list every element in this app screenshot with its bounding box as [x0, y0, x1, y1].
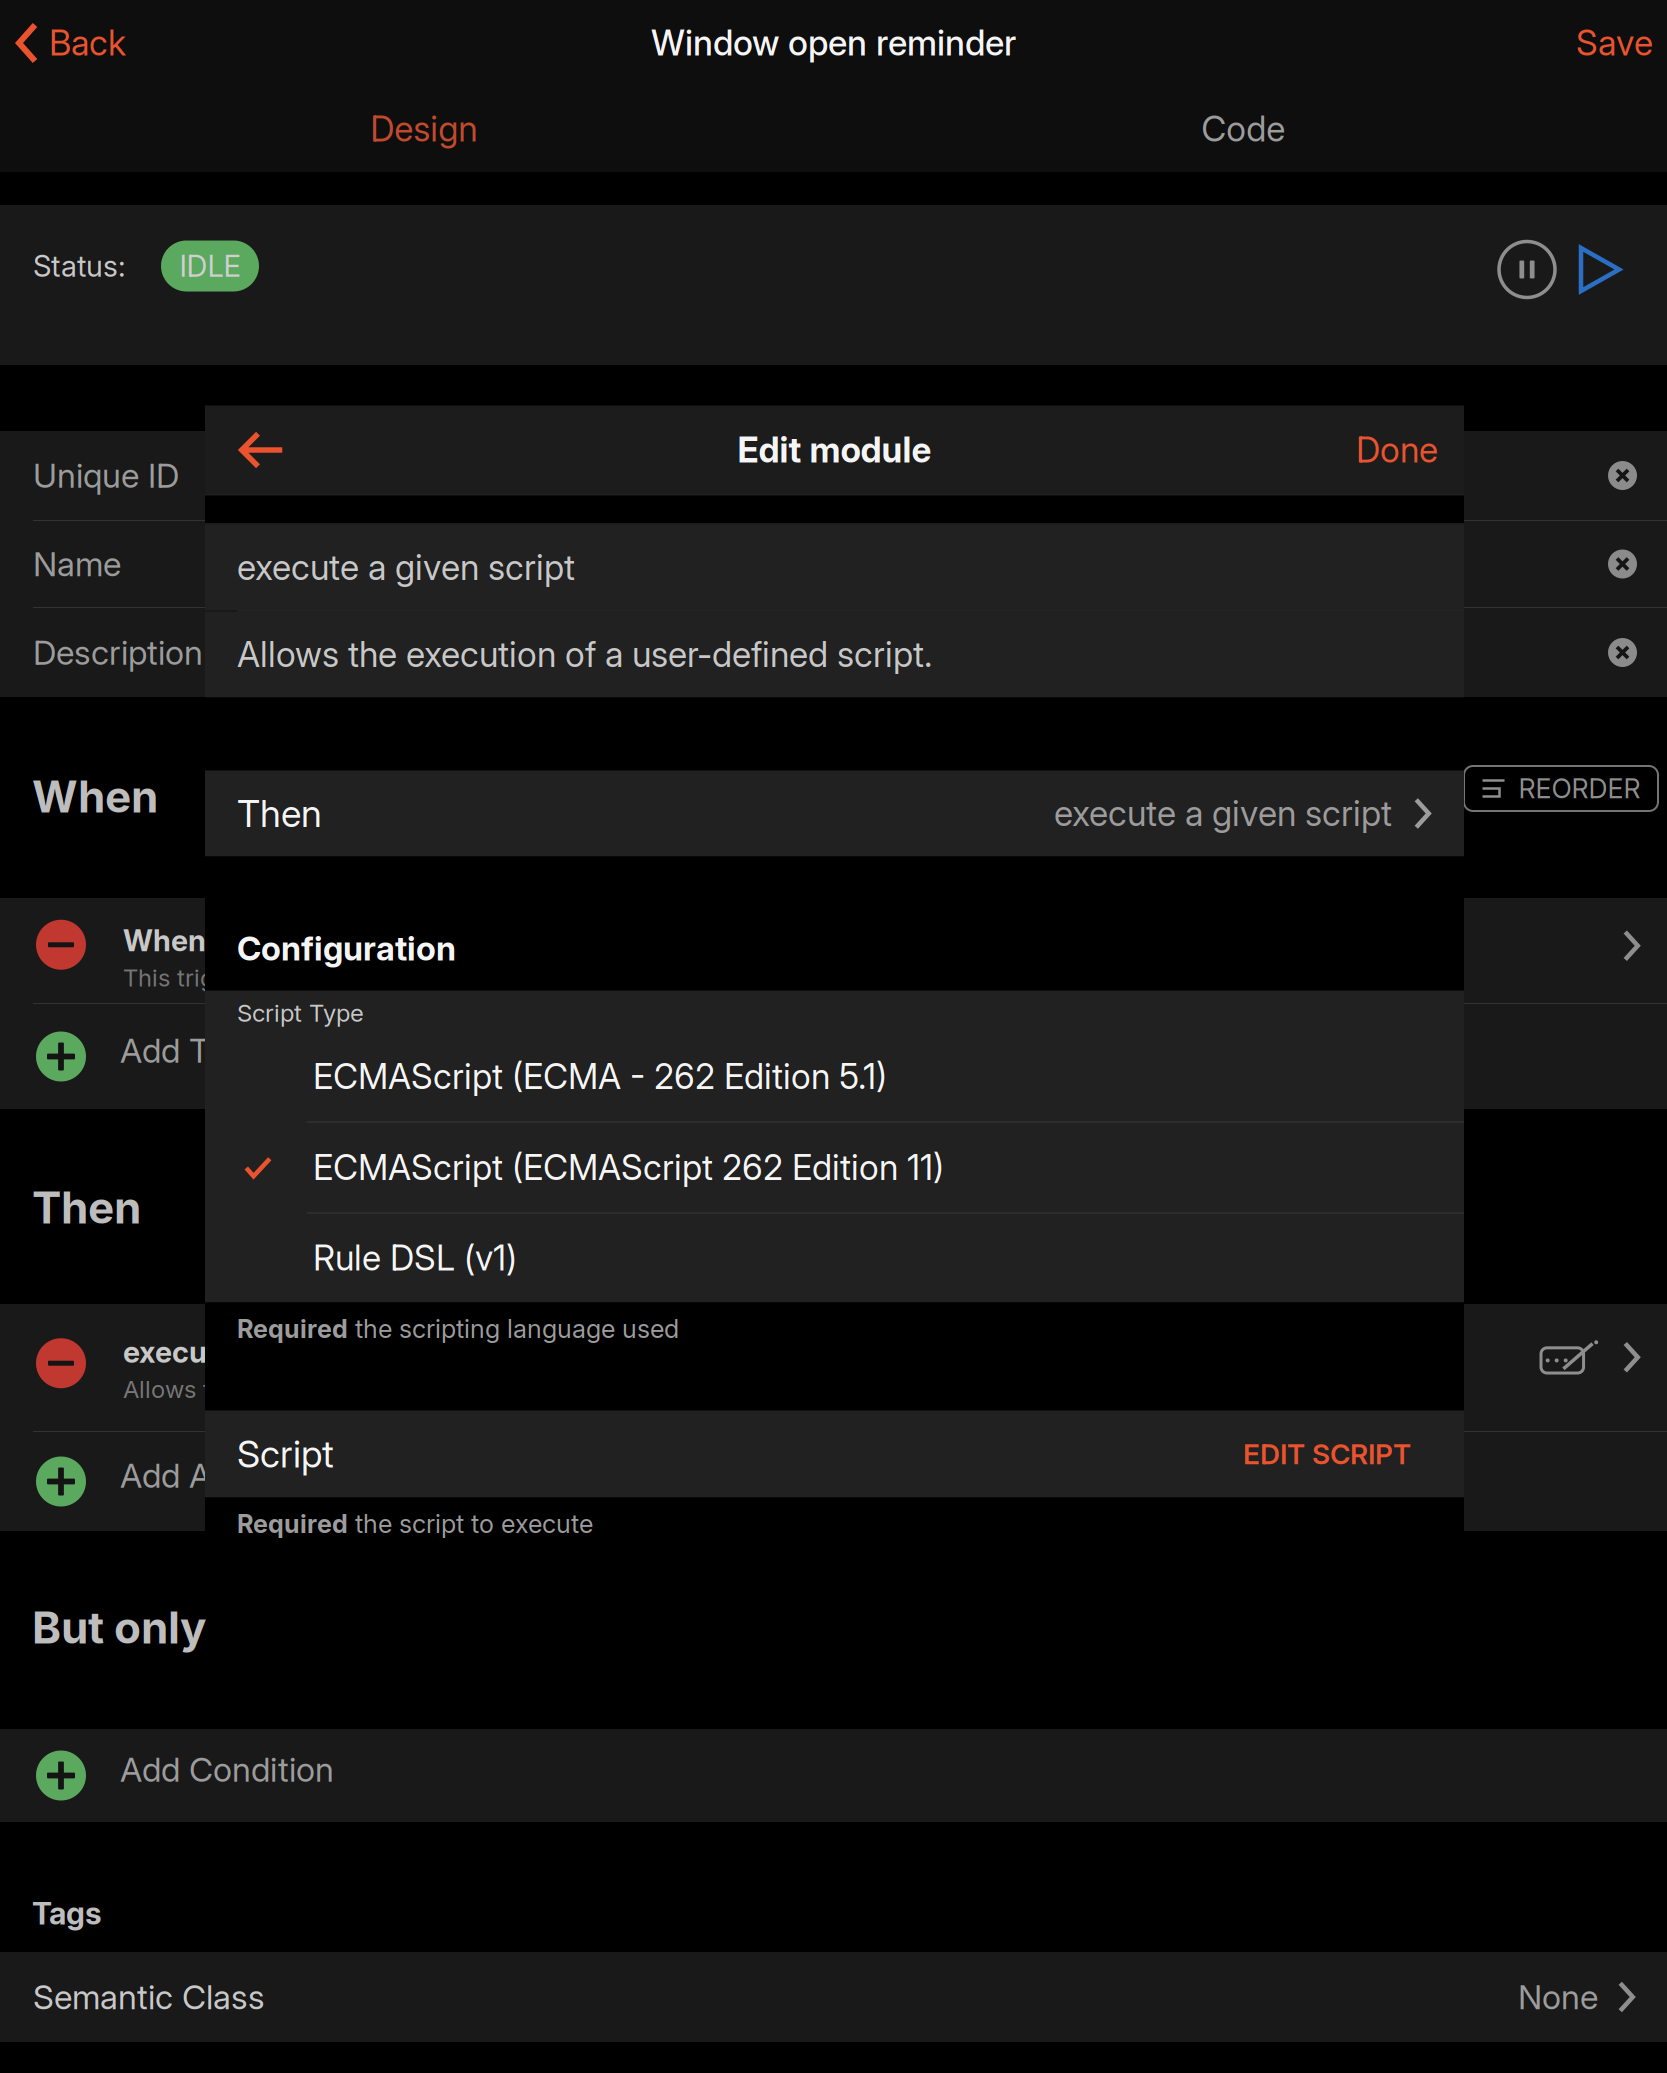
staticText: When the window opens: [123, 923, 471, 958]
button[interactable]: Script: [205, 1410, 1464, 1497]
button[interactable]: Code: [833, 86, 1653, 172]
staticText: the scripting language used: [348, 1313, 679, 1344]
button[interactable]: Back: [0, 0, 136, 86]
staticText: the script to execute: [348, 1508, 593, 1539]
staticText: None: [1518, 1977, 1598, 2017]
staticText: execute a given script: [237, 546, 575, 588]
staticText: Add Action: [120, 1455, 285, 1496]
staticText: This trigger fires when a window is open…: [123, 963, 604, 992]
button[interactable]: Rule DSL (v1): [205, 1213, 1464, 1302]
staticText: Rule DSL (v1): [313, 1237, 517, 1279]
staticText: REORDER: [1518, 772, 1640, 805]
button[interactable]: Then: [205, 770, 1464, 856]
button[interactable]: ECMAScript (ECMA - 262 Edition 5.1): [205, 1031, 1464, 1121]
button[interactable]: Run: [1557, 233, 1643, 305]
staticText: Allows the execution of a user-defined s…: [123, 1375, 631, 1404]
button[interactable]: execute a given script: [0, 1304, 1667, 1431]
staticText: Edit module: [737, 429, 931, 471]
staticText: Allows the execution of a user-defined s…: [237, 633, 932, 675]
staticText: Design: [370, 108, 477, 150]
staticText: Save: [1576, 22, 1653, 64]
staticText: Add Condition: [120, 1749, 334, 1790]
staticText: Name: [33, 544, 121, 584]
button[interactable]: Done: [1336, 405, 1464, 494]
staticText: EDIT SCRIPT: [1243, 1437, 1411, 1471]
button[interactable]: Semantic Class: [0, 1952, 1667, 2042]
staticText: Script: [237, 1431, 334, 1477]
staticText: Configuration: [237, 928, 456, 968]
staticText: Done: [1356, 429, 1438, 471]
button[interactable]: Pause: [1497, 233, 1557, 305]
staticText: Semantic Class: [33, 1977, 265, 2017]
staticText: Description: [33, 632, 203, 673]
staticText: Add Trigger: [120, 1030, 293, 1071]
staticText: But only: [32, 1601, 206, 1654]
staticText: ECMAScript (ECMAScript 262 Edition 11): [313, 1146, 944, 1188]
staticText: When: [32, 770, 158, 823]
button[interactable]: When the window opens: [0, 898, 1667, 1003]
button[interactable]: REORDER: [1464, 766, 1658, 811]
staticText: Then: [237, 791, 322, 836]
staticText: Then: [32, 1181, 141, 1234]
staticText: Script Type: [237, 998, 364, 1027]
staticText: Required: [237, 1508, 348, 1539]
button[interactable]: Back: [205, 405, 319, 494]
button[interactable]: Design: [14, 86, 833, 172]
button[interactable]: Add Trigger: [0, 1004, 1667, 1109]
staticText: execute a given script: [123, 1334, 432, 1370]
staticText: IDLE: [179, 248, 240, 284]
staticText: Status:: [33, 248, 126, 284]
staticText: Required: [237, 1313, 348, 1344]
staticText: ECMAScript (ECMA - 262 Edition 5.1): [313, 1055, 887, 1097]
staticText: Back: [49, 22, 126, 64]
button[interactable]: Save: [1566, 0, 1667, 86]
staticText: execute a given script: [1054, 792, 1392, 834]
button[interactable]: Add Condition: [0, 1729, 1667, 1822]
staticText: Window open reminder: [651, 22, 1016, 64]
button[interactable]: Add Action: [0, 1432, 1667, 1531]
staticText: Tags: [32, 1895, 102, 1932]
staticText: Code: [1201, 108, 1285, 150]
button[interactable]: ECMAScript (ECMAScript 262 Edition 11): [205, 1122, 1464, 1212]
staticText: Unique ID: [33, 455, 179, 496]
